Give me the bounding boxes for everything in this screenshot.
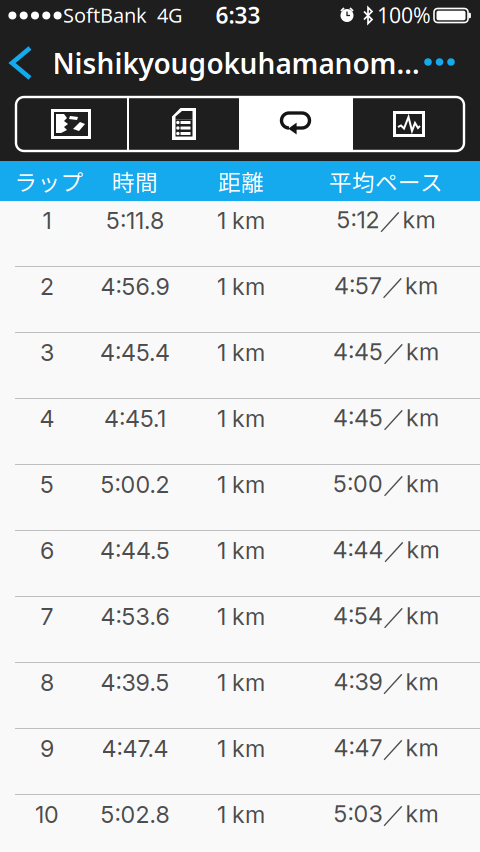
- staticText: 9: [40, 734, 54, 763]
- staticText: 1 km: [217, 800, 265, 829]
- staticText: 5:00.2: [100, 470, 169, 499]
- button[interactable]: Back: [0, 35, 56, 90]
- staticText: 平均ペース: [329, 165, 443, 197]
- staticText: 100%: [377, 1, 431, 29]
- button[interactable]: More options: [412, 34, 467, 89]
- staticText: 5:03／km: [333, 800, 438, 829]
- staticText: 1: [42, 206, 51, 235]
- staticText: 1 km: [217, 602, 265, 631]
- staticText: 4:57／km: [334, 272, 438, 301]
- staticText: 1 km: [217, 668, 265, 697]
- staticText: 6:33: [215, 0, 260, 30]
- staticText: 10: [35, 800, 59, 829]
- staticText: 時間: [112, 165, 158, 197]
- staticText: 4:39.5: [100, 668, 169, 697]
- staticText: 5:00／km: [333, 470, 439, 499]
- staticText: 4:45.4: [100, 338, 170, 367]
- staticText: 4:44.5: [100, 536, 170, 565]
- staticText: 距離: [218, 165, 264, 197]
- button[interactable]: Map: [15, 97, 127, 151]
- staticText: 1 km: [217, 734, 265, 763]
- staticText: 2: [40, 272, 54, 301]
- staticText: 1 km: [217, 206, 265, 235]
- staticText: 4G: [157, 2, 183, 28]
- staticText: 4:56.9: [100, 272, 169, 301]
- staticText: 5:02.8: [100, 800, 169, 829]
- staticText: 5: [40, 470, 54, 499]
- staticText: 6: [40, 536, 54, 565]
- staticText: 1 km: [217, 536, 265, 565]
- staticText: 7: [40, 602, 53, 631]
- staticText: 1 km: [217, 272, 265, 301]
- staticText: 4:45／km: [333, 404, 439, 433]
- staticText: 1 km: [217, 404, 265, 433]
- staticText: 5:12／km: [336, 206, 435, 235]
- staticText: SoftBank: [63, 2, 147, 28]
- button[interactable]: Laps: [241, 97, 351, 151]
- staticText: 4:47／km: [333, 734, 438, 763]
- button[interactable]: Summary: [129, 97, 239, 151]
- staticText: 1 km: [217, 470, 265, 499]
- staticText: 4:47.4: [101, 734, 168, 763]
- button[interactable]: Charts: [353, 97, 465, 151]
- staticText: 8: [40, 668, 54, 697]
- staticText: Nishikyougokuhamanom…: [52, 44, 419, 82]
- staticText: 4:44／km: [332, 536, 439, 565]
- staticText: 4:39／km: [333, 668, 438, 697]
- staticText: 4:45.1: [104, 404, 166, 433]
- staticText: 3: [40, 338, 54, 367]
- staticText: 4:53.6: [100, 602, 169, 631]
- staticText: 4:54／km: [333, 602, 439, 631]
- staticText: 4: [39, 404, 54, 433]
- staticText: 1 km: [217, 338, 265, 367]
- staticText: 4:45／km: [333, 338, 439, 367]
- staticText: ラップ: [14, 165, 83, 197]
- staticText: 5:11.8: [106, 206, 164, 235]
